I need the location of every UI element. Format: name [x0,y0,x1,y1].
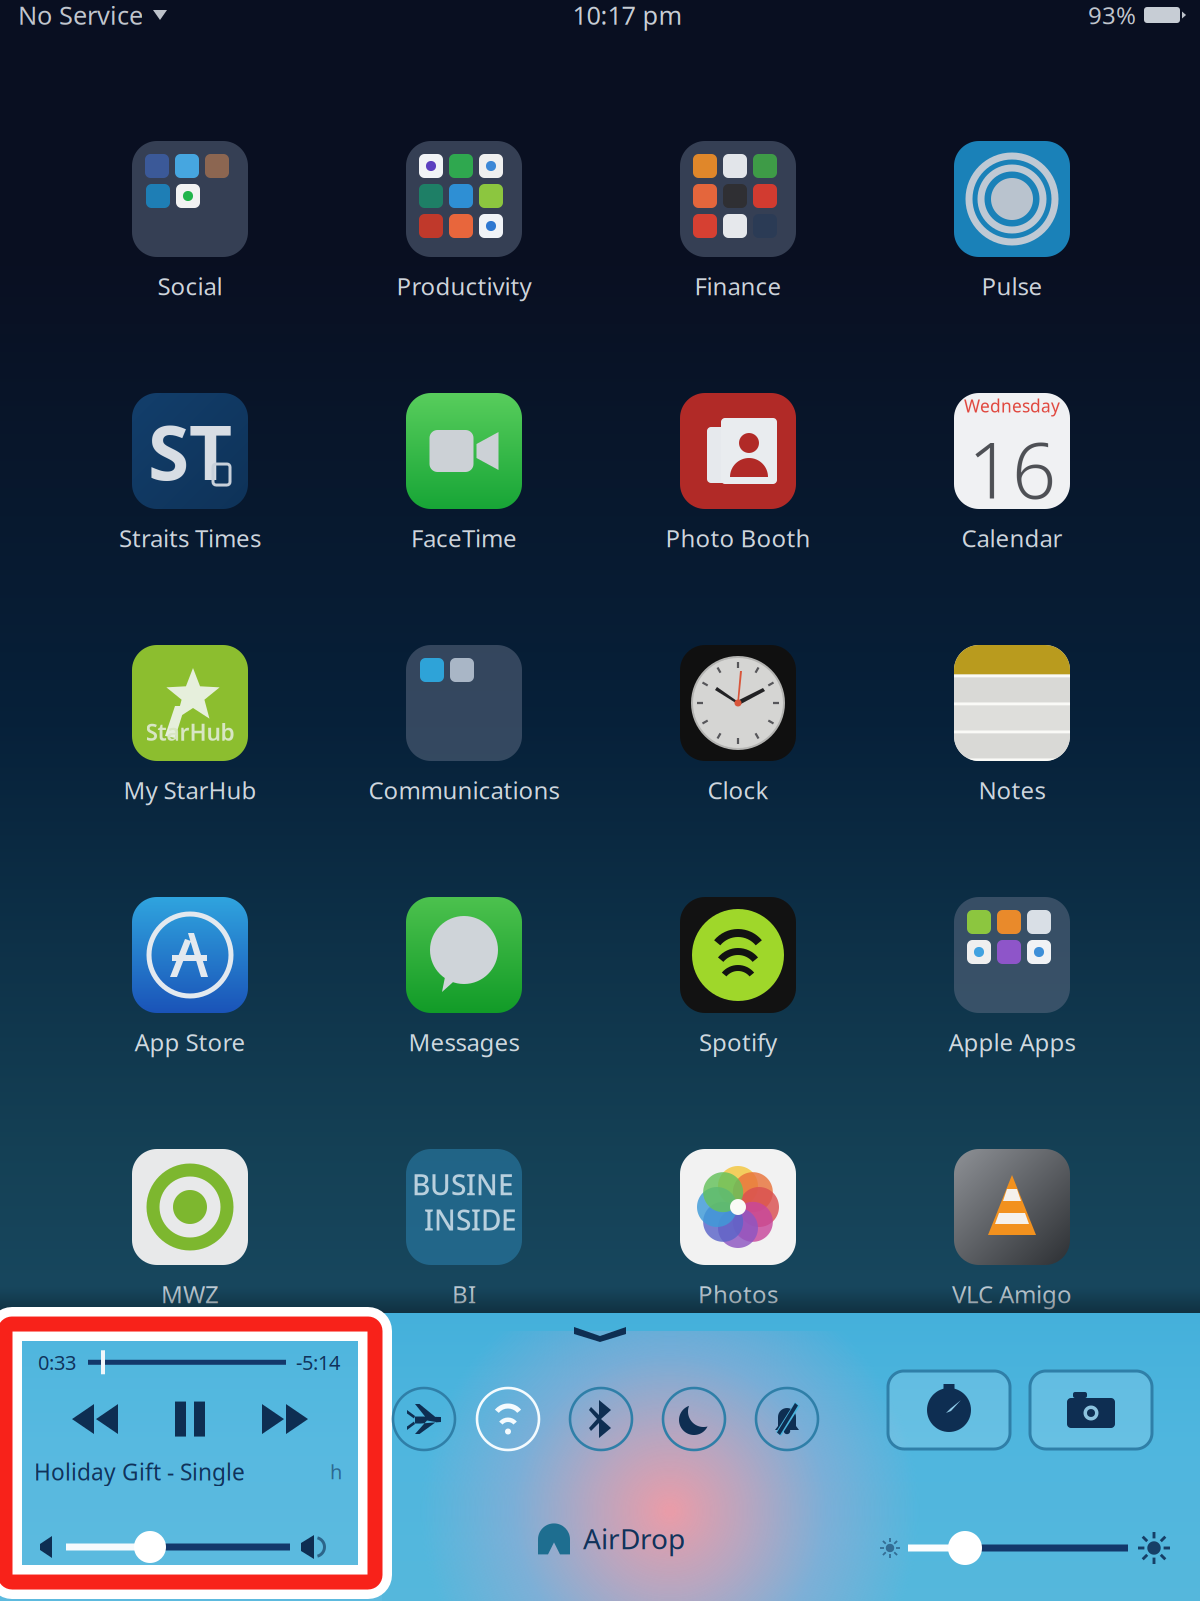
button[interactable]: Communications [327,645,601,897]
staticText: BI [452,1278,476,1310]
staticText: 10:17 pm [572,0,682,32]
button[interactable]: Apple Apps [875,897,1149,1149]
staticText: VLC Amigo [952,1278,1072,1310]
button[interactable]: VLC Amigo [875,1149,1149,1401]
button[interactable]: Spotify [601,897,875,1149]
staticText: Social [157,270,222,302]
staticText: Wednesday [964,394,1060,417]
button[interactable]: Social [53,141,327,393]
staticText: Holiday Gift - Single [34,1457,245,1487]
staticText: Pulse [981,270,1042,302]
staticText: App Store [134,1026,245,1058]
staticText: No Service [18,0,143,32]
staticText: h [330,1458,342,1485]
button[interactable]: Photos [601,1149,875,1401]
staticText: Messages [408,1026,519,1058]
button[interactable]: BUSINE [327,1149,601,1401]
staticText: 16 [968,417,1056,520]
button[interactable]: Previous track [64,1396,126,1442]
staticText: Photo Booth [665,522,810,554]
button[interactable]: Pause [167,1394,213,1445]
staticText: Productivity [396,270,531,302]
button[interactable]: Do Not Disturb [656,1381,732,1457]
staticText: BUSINE [412,1166,514,1203]
button[interactable]: Productivity [327,141,601,393]
staticText: Calendar [961,522,1062,554]
staticText: Spotify [699,1026,777,1058]
button[interactable]: MWZ [53,1149,327,1401]
button[interactable]: ST [53,393,327,645]
button[interactable]: App Store [53,897,327,1149]
staticText: Communications [368,774,559,806]
staticText: Straits Times [119,522,261,554]
staticText: ST [148,401,232,501]
staticText: Clock [707,774,768,806]
staticText: Notes [978,774,1045,806]
button[interactable]: StarHub [53,645,327,897]
staticText: 93% [1088,0,1136,31]
staticText: My StarHub [123,774,256,806]
staticText: FaceTime [411,522,517,554]
button[interactable]: Timer [888,1371,1010,1449]
button[interactable]: Next track [254,1396,316,1442]
button[interactable]: Clock [601,645,875,897]
button[interactable]: AirDrop [529,1512,693,1565]
button[interactable]: Finance [601,141,875,393]
staticText: Photos [698,1278,778,1310]
button[interactable]: Camera [1030,1371,1152,1449]
button[interactable]: Mute [749,1381,825,1457]
button[interactable]: Airplane Mode [386,1381,462,1457]
button[interactable]: Bluetooth [563,1381,639,1457]
staticText: INSIDE [424,1201,517,1238]
button[interactable]: Wi-Fi [470,1381,546,1457]
button[interactable]: Photo Booth [601,393,875,645]
staticText: StarHub [145,717,234,747]
staticText: AirDrop [583,1520,685,1557]
button[interactable]: Notes [875,645,1149,897]
button[interactable]: Pulse [875,141,1149,393]
staticText: -5:14 [296,1349,340,1376]
staticText: Apple Apps [948,1026,1075,1058]
staticText: MWZ [161,1278,219,1310]
staticText: Finance [694,270,781,302]
button[interactable]: Messages [327,897,601,1149]
staticText: 0:33 [38,1349,76,1376]
button[interactable]: FaceTime [327,393,601,645]
button[interactable]: Wednesday [875,393,1149,645]
